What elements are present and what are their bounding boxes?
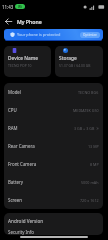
button[interactable]: Front Camera xyxy=(4,155,103,173)
staticText: Rear Camera xyxy=(8,143,35,149)
staticText: TECNO POP 10 xyxy=(8,63,32,68)
staticText: 13 MP xyxy=(88,144,99,149)
staticText: Battery xyxy=(8,179,24,185)
staticText: RAM xyxy=(8,125,18,131)
staticText: Your phone is protected xyxy=(17,32,61,37)
staticText: 5000 mAh xyxy=(81,180,99,185)
button[interactable]: Rear Camera xyxy=(4,137,103,155)
staticText: 11:43 xyxy=(2,4,14,10)
staticText: TECNO BG6 xyxy=(78,90,99,95)
button[interactable]: CPU xyxy=(4,101,103,119)
button[interactable]: Battery xyxy=(4,173,103,191)
staticText: Storage xyxy=(59,55,77,62)
button[interactable]: RAM xyxy=(4,119,103,137)
button[interactable]: Model xyxy=(4,83,103,101)
staticText: 51.37 GB / 64.00 GB xyxy=(59,63,91,68)
button[interactable]: Storage xyxy=(55,46,103,77)
staticText: Security Info xyxy=(8,229,34,235)
staticText: 720 x 1612 xyxy=(80,198,99,203)
staticText: Device Name xyxy=(8,55,39,62)
staticText: Optimize xyxy=(83,33,97,37)
staticText: My Phone xyxy=(17,18,42,25)
staticText: MEDIATEK G50 xyxy=(73,108,99,113)
staticText: 3 GB + 3 GB xyxy=(74,126,95,131)
staticText: Android Version xyxy=(8,218,44,224)
button[interactable]: Android Version xyxy=(4,213,103,235)
button[interactable]: Screen xyxy=(4,191,103,209)
button[interactable]: Your phone is protected xyxy=(4,29,103,40)
button[interactable]: Back xyxy=(2,15,15,28)
staticText: Front Camera xyxy=(8,161,37,167)
staticText: CPU xyxy=(8,107,17,113)
staticText: Model xyxy=(8,89,21,95)
staticText: 8 MP xyxy=(90,162,99,167)
staticText: Wi xyxy=(18,5,22,9)
button[interactable]: Device Name xyxy=(4,46,51,77)
staticText: Screen xyxy=(8,197,22,203)
button[interactable]: Optimize xyxy=(80,32,100,38)
